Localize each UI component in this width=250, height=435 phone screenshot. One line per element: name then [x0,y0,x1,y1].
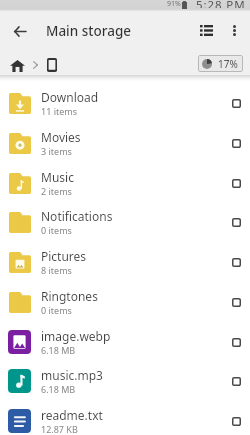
button[interactable]: music.mp3 [0,361,250,401]
button[interactable]: 17% [198,55,243,72]
staticText: Notifications [41,208,113,224]
staticText: 91% [167,0,181,9]
button[interactable]: Movies [0,123,250,163]
button[interactable]: Select music.mp3 [224,369,248,393]
staticText: 8 items [41,264,72,276]
staticText: Download [41,89,99,105]
button[interactable]: Pictures [0,242,250,282]
staticText: 0 items [41,224,72,236]
button[interactable]: Download [0,83,250,123]
staticText: Music [41,169,74,185]
staticText: 12.87 KB [41,423,78,435]
staticText: 5:28 PM [196,0,246,8]
button[interactable]: Select Download [224,91,248,115]
button[interactable]: Select Notifications [224,210,248,234]
staticText: 17% [218,57,238,71]
button[interactable]: Select image.webp [224,330,248,354]
staticText: Pictures [41,248,87,264]
staticText: Ringtones [41,288,98,304]
button[interactable]: Ringtones [0,282,250,322]
button[interactable]: Select Movies [224,131,248,155]
button[interactable]: image.webp [0,322,250,362]
staticText: image.webp [41,328,111,344]
staticText: music.mp3 [41,367,103,383]
button[interactable]: Music [0,163,250,203]
staticText: 3 items [41,145,72,157]
button[interactable]: Select Pictures [224,250,248,274]
staticText: 6.18 MB [41,344,76,356]
button[interactable]: Internal storage [42,47,58,73]
staticText: 11 items [41,105,78,117]
button[interactable]: Notifications [0,202,250,242]
button[interactable]: Change view [190,11,216,45]
staticText: 6.18 MB [41,383,76,395]
button[interactable]: Back [0,11,34,45]
staticText: Movies [41,129,81,145]
button[interactable]: Home [4,47,25,73]
staticText: 0 items [41,304,72,316]
button[interactable]: Select Ringtones [224,290,248,314]
button[interactable]: More options [223,11,243,45]
staticText: Main storage [46,22,131,40]
staticText: readme.txt [41,407,103,423]
button[interactable]: Select readme.txt [224,409,248,433]
button[interactable]: Select Music [224,171,248,195]
staticText: 2 items [41,185,72,197]
button[interactable]: readme.txt [0,401,250,435]
